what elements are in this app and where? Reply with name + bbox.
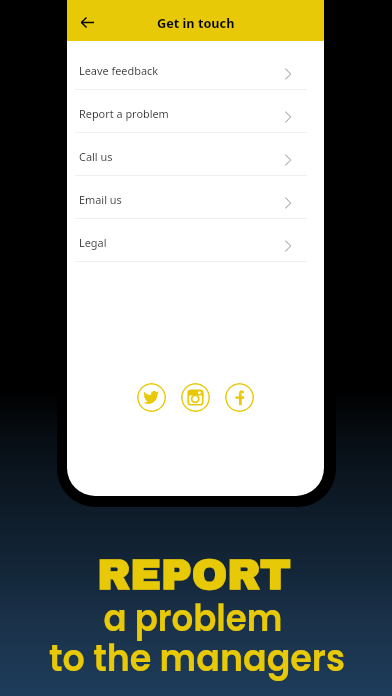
- button[interactable]: Back: [70, 4, 104, 38]
- staticText: REPORT: [0, 552, 390, 598]
- staticText: to the managers: [8, 633, 386, 684]
- staticText: Legal: [79, 235, 107, 250]
- staticText: a problem: [9, 593, 377, 644]
- button[interactable]: Facebook: [225, 383, 254, 412]
- staticText: Get in touch: [157, 14, 235, 31]
- button[interactable]: Twitter: [137, 383, 166, 412]
- button[interactable]: Leave feedback: [67, 47, 324, 90]
- button[interactable]: Report a problem: [67, 90, 324, 133]
- staticText: Leave feedback: [79, 63, 159, 78]
- staticText: Email us: [79, 192, 122, 207]
- button[interactable]: Legal: [67, 219, 324, 262]
- button[interactable]: Email us: [67, 176, 324, 219]
- button[interactable]: Call us: [67, 133, 324, 176]
- staticText: Call us: [79, 149, 113, 164]
- button[interactable]: Instagram: [181, 383, 210, 412]
- staticText: Report a problem: [79, 106, 169, 121]
